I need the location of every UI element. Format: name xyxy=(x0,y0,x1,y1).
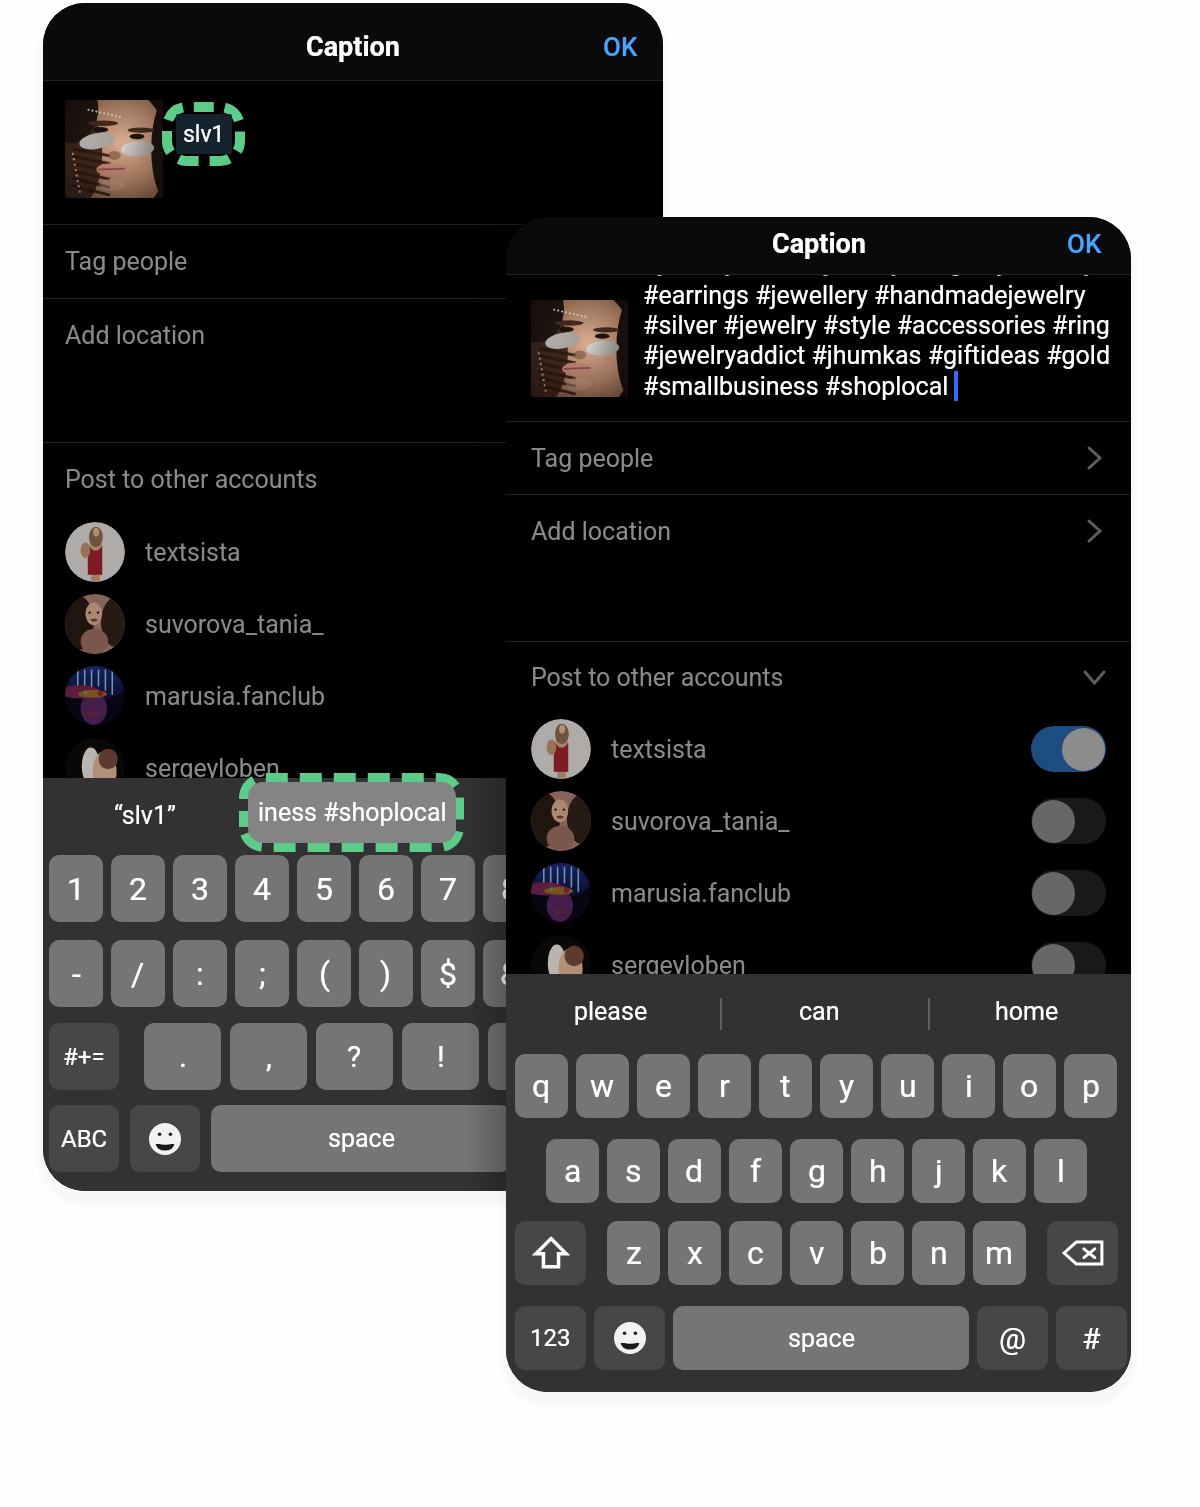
staticText: home xyxy=(995,997,1059,1026)
button[interactable]: , xyxy=(230,1023,307,1090)
button[interactable]: " xyxy=(607,940,661,1007)
button[interactable]: s xyxy=(607,1139,660,1203)
button[interactable]: 3 xyxy=(173,855,227,922)
button[interactable]: suvorova_tania_ xyxy=(506,785,1131,857)
button[interactable]: d xyxy=(668,1139,721,1203)
staticText: Tag people xyxy=(531,444,654,473)
button[interactable]: e xyxy=(637,1054,690,1118)
button[interactable]: #+= xyxy=(49,1023,119,1090)
button[interactable]: r xyxy=(698,1054,751,1118)
button[interactable]: suvorova_tania_ xyxy=(43,588,663,660)
button[interactable]: Tag people xyxy=(506,422,1131,494)
button[interactable]: OK xyxy=(603,17,638,77)
button[interactable]: - xyxy=(49,940,103,1007)
button[interactable]: y xyxy=(820,1054,873,1118)
button[interactable]: & xyxy=(483,940,537,1007)
button[interactable]: q xyxy=(515,1054,568,1118)
button[interactable]: j xyxy=(912,1139,965,1203)
button[interactable]: Shift xyxy=(515,1221,586,1285)
button[interactable]: a xyxy=(546,1139,599,1203)
button[interactable]: l xyxy=(1034,1139,1087,1203)
button[interactable]: ' xyxy=(488,1023,565,1090)
button[interactable]: g xyxy=(790,1139,843,1203)
staticText: @ xyxy=(558,955,587,993)
button[interactable]: w xyxy=(576,1054,629,1118)
button[interactable]: k xyxy=(973,1139,1026,1203)
button[interactable]: p xyxy=(1064,1054,1117,1118)
button[interactable]: 9 xyxy=(545,855,599,922)
staticText: Tag people xyxy=(65,247,188,276)
staticText: can xyxy=(799,997,840,1026)
staticText: ; xyxy=(259,955,266,993)
button[interactable]: v xyxy=(790,1221,843,1285)
button[interactable]: o xyxy=(1003,1054,1056,1118)
button[interactable]: ABC xyxy=(49,1105,119,1172)
button[interactable]: please xyxy=(506,974,715,1048)
button[interactable]: f xyxy=(729,1139,782,1203)
button[interactable]: . xyxy=(144,1023,221,1090)
button[interactable]: 2 xyxy=(111,855,165,922)
button[interactable]: 8 xyxy=(483,855,537,922)
button[interactable]: Tag people xyxy=(43,225,663,298)
button[interactable]: @ xyxy=(977,1306,1048,1370)
button[interactable]: : xyxy=(173,940,227,1007)
button[interactable]: ) xyxy=(359,940,413,1007)
staticText: m xyxy=(985,1234,1014,1272)
button[interactable]: h xyxy=(851,1139,904,1203)
button[interactable]: iness #shoplocal xyxy=(248,782,456,843)
button[interactable]: n xyxy=(912,1221,965,1285)
button[interactable]: @ xyxy=(545,940,599,1007)
button[interactable]: Backspace xyxy=(1047,1221,1118,1285)
button[interactable]: $ xyxy=(421,940,475,1007)
button[interactable]: # xyxy=(1056,1306,1127,1370)
button[interactable]: space xyxy=(211,1105,511,1172)
staticText: suvorova_tania_ xyxy=(145,610,324,639)
staticText: w xyxy=(590,1067,615,1105)
button[interactable]: u xyxy=(881,1054,934,1118)
button[interactable]: textsista xyxy=(506,713,1131,785)
button[interactable]: 7 xyxy=(421,855,475,922)
button[interactable]: b xyxy=(851,1221,904,1285)
button[interactable]: z xyxy=(607,1221,660,1285)
button[interactable]: Add location xyxy=(43,299,663,372)
button[interactable]: 123 xyxy=(515,1306,586,1370)
button[interactable]: OK xyxy=(1067,217,1102,272)
button[interactable]: 6 xyxy=(359,855,413,922)
button[interactable]: sergeyloben xyxy=(43,732,663,804)
staticText: 1 xyxy=(67,870,85,908)
staticText: ! xyxy=(437,1039,445,1074)
button[interactable]: can xyxy=(715,974,923,1048)
staticText: #jewelrylovers #jewelrydesign #jewellery… xyxy=(643,275,1131,277)
button[interactable]: 1 xyxy=(49,855,103,922)
staticText: " xyxy=(629,955,640,993)
staticText: g xyxy=(808,1152,826,1190)
staticText: marusia.fanclub xyxy=(145,682,326,711)
button[interactable]: marusia.fanclub xyxy=(43,660,663,732)
button[interactable]: x xyxy=(668,1221,721,1285)
button[interactable]: space xyxy=(673,1306,969,1370)
button[interactable]: 5 xyxy=(297,855,351,922)
button[interactable]: / xyxy=(111,940,165,1007)
button[interactable]: ( xyxy=(297,940,351,1007)
staticText: #jewelryaddict #jhumkas #giftideas #gold xyxy=(643,341,1111,370)
button[interactable]: ; xyxy=(235,940,289,1007)
button[interactable]: c xyxy=(729,1221,782,1285)
staticText: p xyxy=(1082,1067,1100,1105)
button[interactable]: Emoji xyxy=(594,1306,665,1370)
button[interactable]: Emoji xyxy=(130,1105,200,1172)
button[interactable]: 0 xyxy=(607,855,661,922)
button[interactable]: i xyxy=(942,1054,995,1118)
staticText: ( xyxy=(319,955,330,993)
button[interactable]: Add location xyxy=(506,495,1131,567)
button[interactable]: ? xyxy=(316,1023,393,1090)
button[interactable]: t xyxy=(759,1054,812,1118)
button[interactable]: sergeyloben xyxy=(506,929,1131,1001)
button[interactable]: textsista xyxy=(43,516,663,588)
button[interactable]: ! xyxy=(402,1023,479,1090)
staticText: Post to other accounts xyxy=(65,465,318,494)
button[interactable]: home xyxy=(923,974,1131,1048)
button[interactable]: slv1 xyxy=(176,114,232,154)
button[interactable]: m xyxy=(973,1221,1026,1285)
button[interactable]: marusia.fanclub xyxy=(506,857,1131,929)
button[interactable]: 4 xyxy=(235,855,289,922)
